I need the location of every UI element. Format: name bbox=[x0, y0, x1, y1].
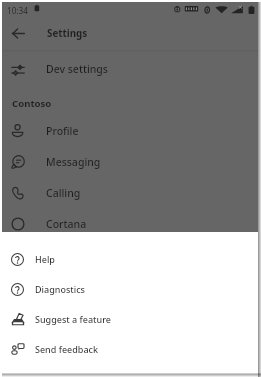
staticText: Help bbox=[35, 253, 55, 265]
button[interactable]: Cortana bbox=[2, 208, 258, 239]
staticText: Send feedback bbox=[35, 343, 98, 355]
staticText: Cortana bbox=[46, 217, 87, 231]
staticText: Dev settings bbox=[46, 62, 108, 76]
staticText: Settings bbox=[47, 27, 88, 40]
staticText: Diagnostics bbox=[35, 283, 85, 295]
button[interactable]: Diagnostics bbox=[2, 274, 258, 304]
button[interactable]: Profile bbox=[2, 115, 258, 146]
staticText: Suggest a feature bbox=[35, 313, 111, 325]
button[interactable]: Calling bbox=[2, 177, 258, 208]
staticText: Calling bbox=[46, 186, 81, 200]
button[interactable]: Send feedback bbox=[2, 334, 258, 364]
staticText: Profile bbox=[46, 124, 79, 138]
button[interactable]: Help bbox=[2, 244, 258, 274]
button[interactable]: Back bbox=[7, 22, 30, 45]
staticText: 10:34 bbox=[7, 5, 28, 16]
button[interactable]: Dev settings bbox=[2, 53, 258, 84]
button[interactable]: Messaging bbox=[2, 146, 258, 177]
staticText: Messaging bbox=[46, 155, 101, 169]
staticText: Contoso bbox=[12, 97, 52, 110]
button[interactable]: Suggest a feature bbox=[2, 304, 258, 334]
